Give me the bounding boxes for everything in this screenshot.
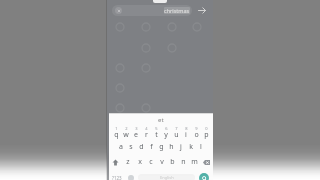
button[interactable]: h	[166, 140, 176, 154]
button[interactable]: 0	[201, 126, 211, 140]
staticText: christmas	[164, 7, 190, 14]
button[interactable]: z	[122, 154, 134, 170]
staticText: 0	[205, 126, 208, 131]
button[interactable]: n	[178, 154, 189, 170]
staticText: u	[174, 130, 179, 140]
staticText: a	[119, 142, 123, 152]
button[interactable]: b	[167, 154, 178, 170]
staticText: English	[160, 175, 174, 180]
button[interactable]: christmas	[112, 5, 192, 16]
staticText: x	[138, 157, 142, 167]
button[interactable]: k	[186, 140, 196, 154]
button[interactable]: 9	[191, 126, 201, 140]
button[interactable]: g	[156, 140, 166, 154]
button[interactable]: Emoji	[124, 170, 138, 180]
staticText: 4	[145, 126, 148, 131]
staticText: m	[191, 157, 198, 167]
button[interactable]: s	[126, 140, 136, 154]
staticText: v	[160, 157, 164, 167]
button[interactable]: 6	[161, 126, 171, 140]
button[interactable]: 1	[111, 126, 121, 140]
staticText: z	[126, 157, 130, 167]
button[interactable]: 4	[141, 126, 151, 140]
button[interactable]: ?123	[109, 170, 124, 180]
staticText: e	[134, 130, 138, 140]
staticText: t	[155, 130, 158, 140]
staticText: 1	[115, 126, 118, 131]
button[interactable]: Search	[195, 5, 208, 16]
button[interactable]: 2	[121, 126, 131, 140]
staticText: n	[181, 157, 186, 167]
button[interactable]: m	[189, 154, 200, 170]
button[interactable]: 7	[171, 126, 181, 140]
staticText: j	[180, 142, 182, 152]
staticText: 6	[165, 126, 168, 131]
button[interactable]: a	[116, 140, 126, 154]
button[interactable]: 8	[181, 126, 191, 140]
staticText: b	[170, 157, 175, 167]
button[interactable]: f	[146, 140, 156, 154]
staticText: 7	[175, 126, 178, 131]
staticText: ?123	[112, 175, 122, 180]
button[interactable]: Backspace	[200, 154, 213, 170]
staticText: q	[114, 130, 119, 140]
button[interactable]: 5	[151, 126, 161, 140]
staticText: g	[159, 142, 164, 152]
button[interactable]: c	[145, 154, 156, 170]
staticText: l	[200, 142, 202, 152]
staticText: 3	[135, 126, 138, 131]
staticText: o	[194, 130, 199, 140]
button[interactable]: Shift	[109, 154, 122, 170]
button[interactable]: 3	[131, 126, 141, 140]
staticText: 9	[195, 126, 198, 131]
staticText: c	[149, 157, 153, 167]
staticText: 5	[155, 126, 158, 131]
button[interactable]: Search	[195, 170, 213, 180]
staticText: h	[169, 142, 174, 152]
staticText: r	[145, 130, 148, 140]
button[interactable]: v	[156, 154, 167, 170]
button[interactable]: English	[138, 174, 195, 180]
button[interactable]: l	[196, 140, 206, 154]
staticText: y	[164, 130, 168, 140]
staticText: et	[158, 116, 164, 124]
staticText: f	[150, 142, 153, 152]
staticText: d	[139, 142, 144, 152]
staticText: i	[185, 130, 187, 140]
staticText: p	[204, 130, 209, 140]
button[interactable]: d	[136, 140, 146, 154]
staticText: s	[129, 142, 133, 152]
staticText: 8	[185, 126, 188, 131]
staticText: k	[189, 142, 193, 152]
button[interactable]: j	[176, 140, 186, 154]
staticText: w	[123, 130, 129, 140]
button[interactable]: x	[134, 154, 145, 170]
staticText: 2	[125, 126, 128, 131]
